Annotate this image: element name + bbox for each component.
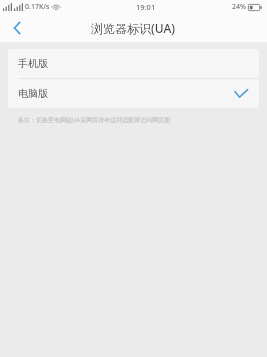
staticText: 24% bbox=[232, 2, 246, 12]
staticText: 手机版 bbox=[18, 57, 48, 70]
button[interactable]: 电脑版 bbox=[8, 79, 259, 108]
button[interactable]: Back bbox=[0, 14, 34, 42]
button[interactable]: 手机版 bbox=[8, 49, 259, 78]
staticText: 电脑版 bbox=[18, 87, 48, 100]
staticText: 0.17K/s bbox=[25, 2, 50, 12]
staticText: 备注：切换至电脑版UA后网页排布达到适配将访问网页面 bbox=[18, 116, 171, 124]
staticText: 浏览器标识(UA) bbox=[91, 20, 176, 36]
staticText: 19:01 bbox=[136, 2, 156, 12]
